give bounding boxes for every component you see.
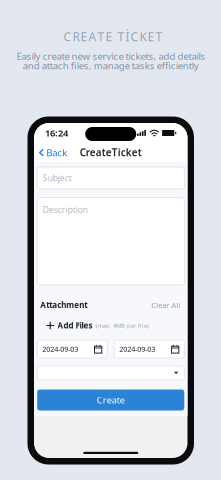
staticText: Create [97,394,125,406]
button[interactable]: Back [36,143,70,162]
staticText: Description [43,204,88,216]
button[interactable]: 2024-09-03 [37,340,107,358]
staticText: Attachment [40,300,87,310]
staticText: (max. 4MB per file) [96,321,149,329]
staticText: Easily create new service tickets, add d… [16,49,205,63]
button[interactable]: Add Files [46,319,149,332]
staticText: Add Files [58,320,93,331]
staticText: and attach files, manage tasks efficient… [23,59,199,72]
staticText: CreateTicket [80,146,142,159]
button[interactable] [37,366,184,380]
staticText: C R E A T E T İ C K E T [63,28,162,45]
button[interactable]: 2024-09-03 [114,340,184,358]
staticText: Subject [43,172,72,184]
button[interactable]: Subject [37,167,184,189]
button[interactable]: Description [37,197,184,285]
staticText: Clear All [151,300,180,310]
staticText: 2024-09-03 [119,344,155,354]
staticText: Back [46,146,67,159]
button[interactable]: Create [37,389,184,410]
button[interactable]: Clear All [150,300,181,310]
staticText: 2024-09-03 [42,344,78,354]
staticText: 16:24 [45,127,68,139]
